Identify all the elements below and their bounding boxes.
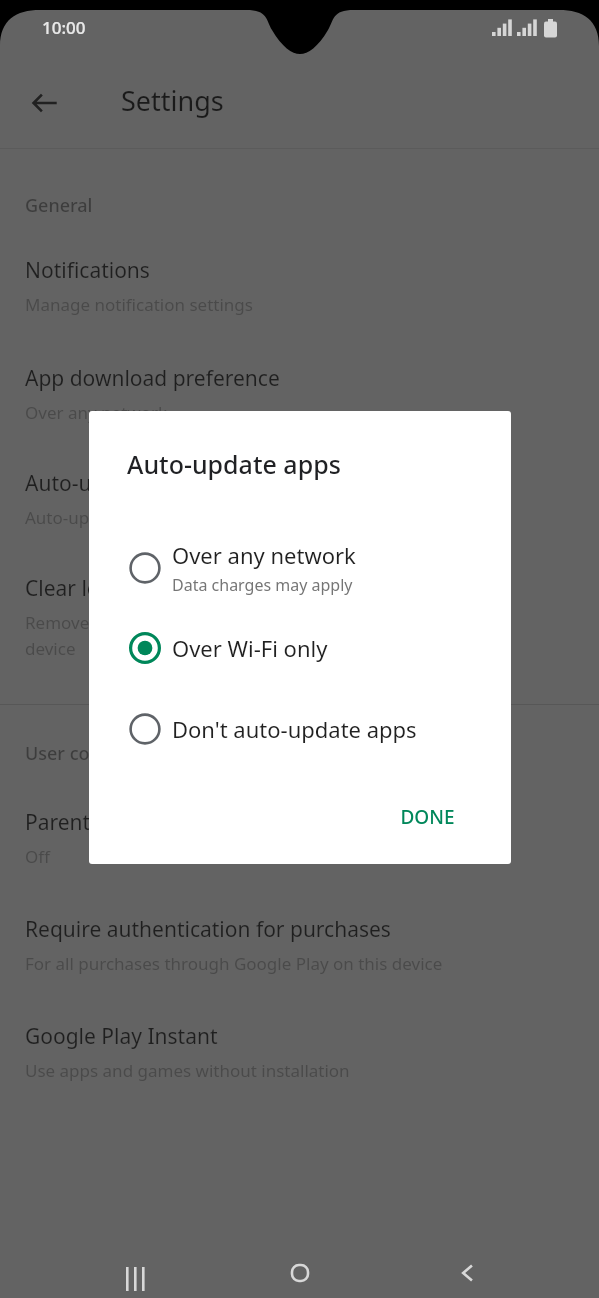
staticText: User controls <box>25 741 140 766</box>
button[interactable]: Auto-update apps <box>25 469 599 529</box>
button[interactable]: Require authentication for purchases <box>25 915 599 975</box>
staticText: Remove all app searches you've performed… <box>25 611 427 660</box>
button[interactable]: Over any network <box>89 530 511 606</box>
staticText: Parental controls <box>25 808 193 837</box>
button[interactable]: Notifications <box>25 256 599 316</box>
staticText: Auto-update apps <box>127 447 341 481</box>
button[interactable]: Don't auto-update apps <box>89 696 511 762</box>
staticText: Over Wi-Fi only <box>172 633 328 663</box>
staticText: DONE <box>400 804 455 830</box>
staticText: Notifications <box>25 256 150 285</box>
staticText: Auto-update apps over Wi-Fi only <box>25 506 290 529</box>
staticText: Over any network <box>172 540 356 570</box>
staticText: Clear local search history <box>25 574 271 603</box>
button[interactable]: Back <box>443 1248 493 1298</box>
button[interactable]: Home <box>275 1248 325 1298</box>
button[interactable]: Back <box>20 78 70 128</box>
staticText: App download preference <box>25 364 280 393</box>
staticText: Off <box>25 845 50 868</box>
staticText: Settings <box>121 82 224 119</box>
button[interactable]: Recents <box>109 1248 159 1298</box>
staticText: Auto-update apps <box>25 469 202 498</box>
staticText: Use apps and games without installation <box>25 1059 350 1082</box>
button[interactable]: Clear local search history <box>25 574 599 660</box>
staticText: General <box>25 193 93 218</box>
button[interactable]: App download preference <box>25 364 599 424</box>
staticText: For all purchases through Google Play on… <box>25 952 443 975</box>
button[interactable]: Over Wi-Fi only <box>89 615 511 681</box>
staticText: Require authentication for purchases <box>25 915 391 944</box>
staticText: Manage notification settings <box>25 293 253 316</box>
button[interactable]: DONE <box>367 789 487 845</box>
staticText: 10:00 <box>42 16 86 39</box>
staticText: Don't auto-update apps <box>172 714 417 744</box>
staticText: Google Play Instant <box>25 1022 218 1051</box>
staticText: Data charges may apply <box>172 574 353 596</box>
button[interactable]: Parental controls <box>25 808 599 868</box>
button[interactable]: Google Play Instant <box>25 1022 599 1082</box>
staticText: Over any network <box>25 401 168 424</box>
